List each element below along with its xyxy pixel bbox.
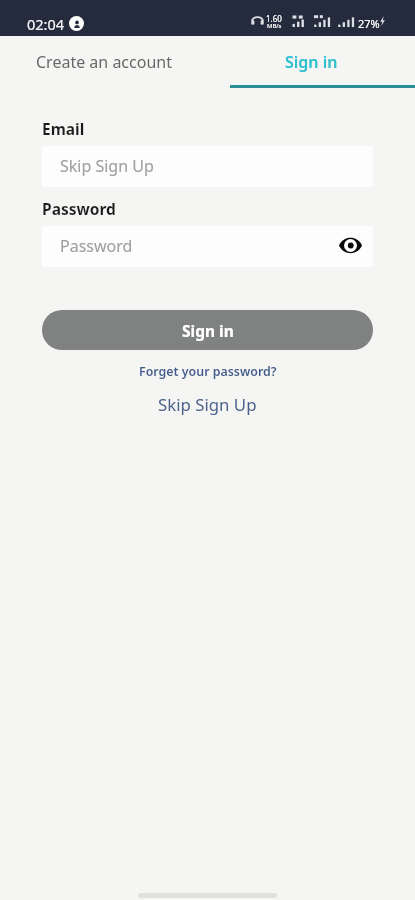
button[interactable]: Sign in — [42, 310, 373, 350]
button[interactable]: Forget your password? — [42, 358, 373, 384]
staticText: 02:04 — [27, 14, 65, 34]
button[interactable]: Sign in — [208, 36, 415, 88]
staticText: Create an account — [36, 51, 172, 73]
staticText: 27% — [358, 16, 380, 31]
staticText: Forget your password? — [139, 363, 277, 380]
staticText: MB/s — [267, 22, 282, 30]
staticText: Skip Sign Up — [60, 155, 154, 177]
button[interactable]: Skip Sign Up — [42, 388, 373, 420]
staticText: Email — [42, 118, 85, 139]
button[interactable]: Show password — [336, 231, 364, 259]
staticText: Password — [60, 235, 133, 257]
button[interactable]: Create an account — [0, 36, 208, 88]
staticText: Password — [42, 198, 116, 219]
button[interactable]: Skip Sign Up — [42, 146, 373, 187]
staticText: Sign in — [285, 51, 338, 73]
staticText: 1.60 — [266, 13, 282, 24]
button[interactable]: Password — [42, 226, 373, 267]
staticText: Skip Sign Up — [158, 393, 257, 416]
staticText: Sign in — [182, 320, 234, 341]
